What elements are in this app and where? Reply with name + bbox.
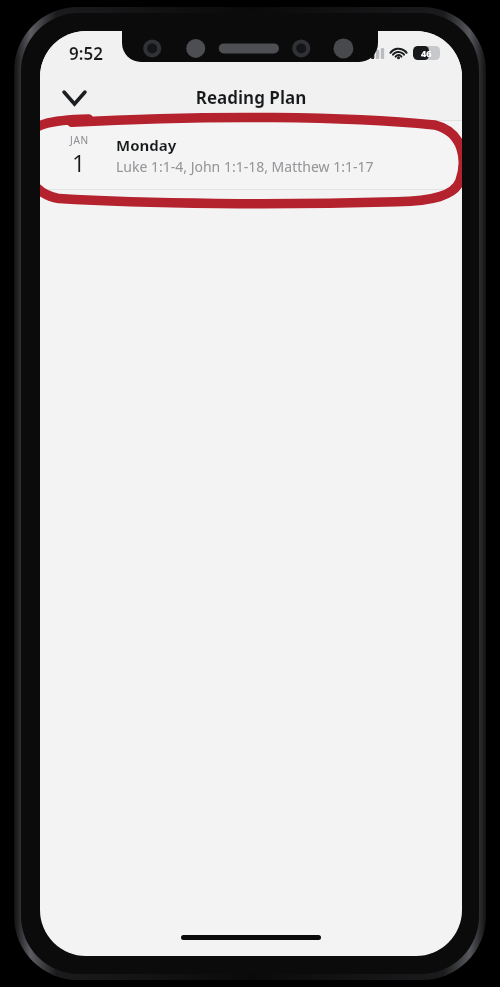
staticText: Reading Plan bbox=[40, 86, 462, 109]
button[interactable]: JAN bbox=[40, 121, 462, 189]
staticText: JAN bbox=[70, 133, 89, 147]
staticText: 46 bbox=[421, 47, 432, 59]
staticText: Monday bbox=[116, 135, 177, 155]
staticText: Luke 1:1-4, John 1:1-18, Matthew 1:1-17 bbox=[116, 157, 374, 176]
button[interactable]: Collapse bbox=[52, 76, 96, 120]
staticText: 1 bbox=[72, 147, 86, 178]
staticText: 9:52 bbox=[69, 42, 103, 65]
